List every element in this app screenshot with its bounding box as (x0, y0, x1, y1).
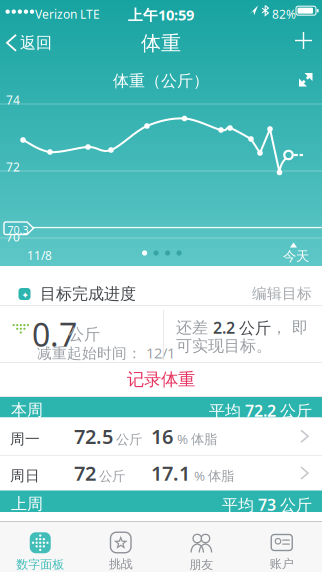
staticText: 上周 (11, 494, 43, 514)
staticText: 目标完成进度 (40, 284, 136, 304)
staticText: 平均 73 公斤 (222, 494, 312, 515)
staticText: 体重 (141, 31, 181, 56)
staticText: 0.7 (32, 313, 77, 355)
staticText: 周日 (10, 467, 40, 485)
staticText: 公斤 (68, 324, 100, 344)
staticText: 平均 72.2 公斤 (209, 400, 312, 421)
staticText: 72 (74, 460, 96, 486)
staticText: 编辑目标 (252, 284, 312, 302)
staticText: 2.2 公斤 (213, 317, 271, 338)
staticText: 16 (151, 423, 173, 450)
staticText: 返回 (20, 33, 52, 53)
staticText: 挑战 (109, 557, 133, 571)
button[interactable]: 账户 (241, 521, 322, 572)
staticText: 17.4 (151, 514, 190, 541)
staticText: 周二 (10, 521, 40, 539)
staticText: ✦ (21, 290, 29, 301)
staticText: 本周 (11, 400, 43, 420)
staticText: 数字面板 (16, 557, 64, 572)
staticText: 72 (6, 159, 20, 175)
staticText: 公斤 (116, 522, 142, 539)
button[interactable]: 展开图表 (0, 0, 322, 266)
staticText: 72.5 (74, 423, 113, 450)
staticText: 17.1 (151, 460, 190, 486)
staticText: 可实现目标。 (176, 336, 272, 356)
staticText: 账户 (270, 556, 294, 571)
staticText: ， 即 (271, 318, 308, 337)
staticText: 70 (6, 229, 20, 245)
button[interactable]: 记录体重 (0, 363, 322, 396)
staticText: 72.3 (74, 514, 113, 541)
staticText: % 体脂 (194, 467, 234, 484)
button[interactable]: 挑战 (80, 521, 161, 572)
staticText: 朋友 (189, 557, 213, 572)
staticText: 上午10:59 (128, 5, 194, 24)
staticText: 今天 (283, 248, 309, 264)
staticText: 记录体重 (127, 369, 195, 390)
staticText: 74 (6, 92, 20, 108)
staticText: 公斤 (99, 468, 125, 485)
staticText: 82% (272, 6, 296, 22)
staticText: Verizon (35, 6, 77, 22)
staticText: 70.3 (7, 223, 28, 237)
button[interactable]: 数字面板 (0, 521, 80, 572)
button[interactable]: 添加 (287, 24, 320, 57)
button[interactable]: 返回 (0, 27, 52, 59)
button[interactable]: 编辑目标 (252, 280, 312, 306)
staticText: 体重（公斤） (113, 71, 209, 91)
staticText: % 体脂 (177, 430, 217, 448)
button[interactable]: 朋友 (161, 521, 241, 572)
staticText: 周一 (10, 430, 40, 448)
staticText: 公斤 (116, 431, 142, 448)
staticText: 减重起始时间： 12/1 (37, 343, 175, 362)
staticText: % 体脂 (194, 521, 234, 539)
staticText: LTE (80, 6, 100, 22)
button[interactable]: 周日 (0, 456, 322, 490)
button[interactable]: 周一 (0, 417, 322, 455)
staticText: 11/8 (27, 247, 52, 263)
staticText: 还差 (176, 318, 213, 337)
